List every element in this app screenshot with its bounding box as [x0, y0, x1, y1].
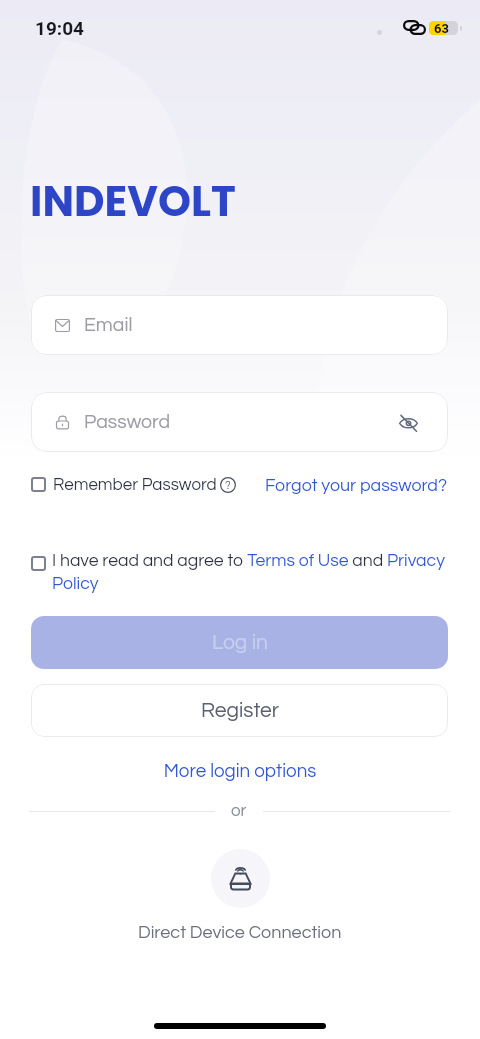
button[interactable]: Remember Password: [53, 476, 217, 494]
button[interactable]: I have read and agree to Terms of Use an…: [52, 552, 450, 592]
button[interactable]: Log in: [31, 616, 448, 669]
staticText: INDEVOLT: [30, 172, 236, 231]
staticText: Password: [84, 412, 171, 432]
button[interactable]: Remember password: [31, 477, 46, 492]
staticText: Log in: [212, 632, 268, 654]
staticText: 19:04: [35, 17, 84, 39]
button[interactable]: Direct Device Connection: [0, 849, 480, 942]
staticText: ?: [225, 480, 231, 491]
staticText: or: [231, 802, 247, 820]
button[interactable]: Show password: [393, 407, 423, 437]
staticText: Register: [201, 700, 279, 722]
staticText: Direct Device Connection: [138, 923, 342, 942]
button[interactable]: Agree to terms: [31, 556, 46, 571]
button[interactable]: More login options: [0, 762, 480, 781]
staticText: 63: [434, 21, 449, 35]
button[interactable]: Password: [31, 392, 448, 452]
button[interactable]: Forgot your password?: [265, 476, 448, 494]
button[interactable]: Email: [31, 295, 448, 355]
button[interactable]: Register: [31, 684, 448, 737]
staticText: Email: [84, 315, 133, 335]
button[interactable]: Help: [219, 476, 237, 494]
